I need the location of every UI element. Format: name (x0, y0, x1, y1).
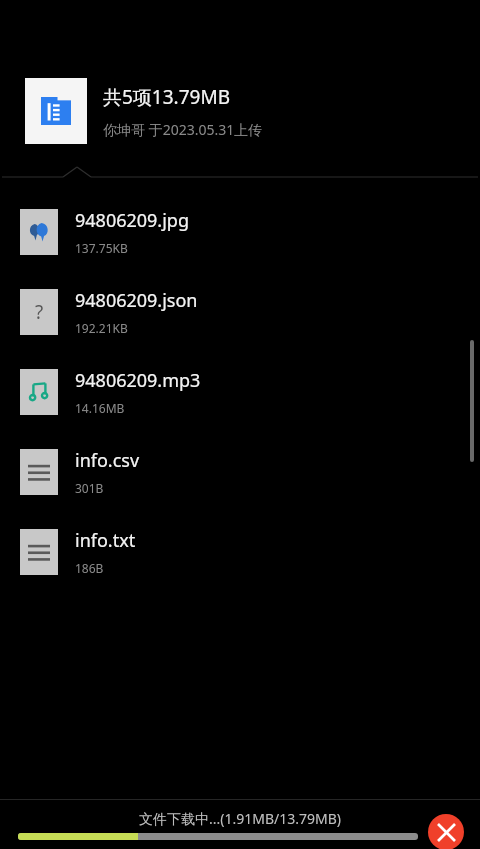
staticText: 14.16MB (75, 400, 125, 416)
staticText: 301B (75, 480, 104, 496)
staticText: 94806209.mp3 (75, 368, 201, 393)
staticText: ? (35, 299, 44, 325)
button[interactable]: ? (0, 272, 480, 352)
button[interactable]: Cancel download (428, 814, 464, 849)
staticText: info.txt (75, 528, 136, 553)
staticText: 192.21KB (75, 320, 128, 336)
button[interactable]: 94806209.jpg (0, 192, 480, 272)
staticText: 共5项13.79MB (103, 84, 231, 110)
staticText: info.csv (75, 448, 140, 473)
staticText: 文件下载中...(1.91MB/13.79MB) (0, 809, 480, 828)
button[interactable]: info.txt (0, 512, 480, 592)
staticText: 94806209.json (75, 288, 198, 313)
staticText: 你坤哥 于2023.05.31上传 (103, 120, 263, 139)
button[interactable]: 共5项13.79MB (0, 78, 480, 144)
staticText: 94806209.jpg (75, 208, 189, 233)
staticText: 137.75KB (75, 240, 128, 256)
button[interactable]: 94806209.mp3 (0, 352, 480, 432)
button[interactable]: info.csv (0, 432, 480, 512)
staticText: 186B (75, 560, 104, 576)
